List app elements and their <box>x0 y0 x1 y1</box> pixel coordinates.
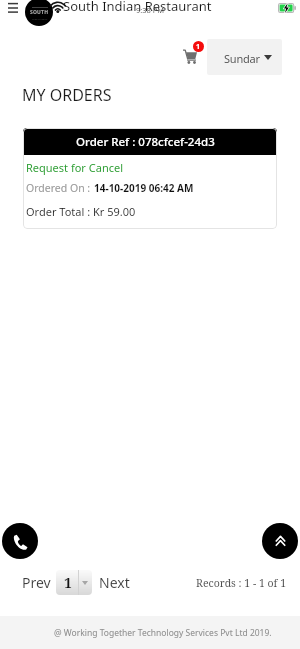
staticText: South Indian Restaurant <box>63 0 212 15</box>
staticText: 9:38 PM <box>136 5 165 15</box>
staticText: 1 <box>196 42 201 52</box>
button[interactable]: 1 <box>56 570 92 595</box>
button[interactable]: Sundar <box>207 39 282 75</box>
button[interactable]: Call <box>2 523 38 559</box>
staticText: 1 <box>64 573 72 592</box>
button[interactable]: Menu <box>4 0 22 17</box>
staticText: INDIAN REST <box>32 17 48 20</box>
button[interactable]: Cart <box>181 46 203 66</box>
staticText: SOUTH <box>30 9 49 16</box>
staticText: Order Total : Kr 59.00 <box>26 204 136 219</box>
staticText: Records : 1 - 1 of 1 <box>196 576 287 590</box>
button[interactable]: Scroll to top <box>262 523 298 559</box>
staticText: MY ORDERS <box>22 84 112 106</box>
staticText: Order Ref : 078cfcef-24d3 <box>76 134 215 150</box>
button[interactable]: Prev <box>18 570 55 594</box>
button[interactable]: Logo <box>24 0 54 27</box>
staticText: Next <box>99 573 130 592</box>
button[interactable]: Next <box>95 570 134 594</box>
button[interactable]: Order Ref : 078cfcef-24d3 <box>23 128 277 229</box>
staticText: @ Working Together Technology Services P… <box>54 627 272 639</box>
staticText: Request for Cancel <box>26 160 123 175</box>
staticText: 14-10-2019 06:42 AM <box>94 181 194 195</box>
staticText: Sundar <box>224 51 260 66</box>
staticText: Ordered On : <box>26 181 91 195</box>
staticText: Prev <box>22 573 51 592</box>
